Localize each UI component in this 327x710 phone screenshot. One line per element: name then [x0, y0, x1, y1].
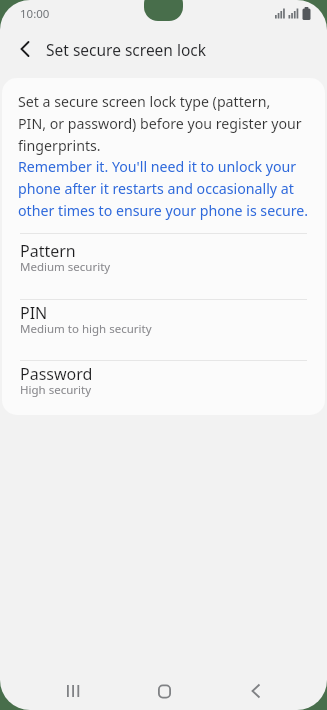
- button[interactable]: [239, 674, 273, 708]
- staticText: Set a secure screen lock type (pattern, …: [18, 92, 302, 155]
- button[interactable]: PIN: [18, 300, 309, 360]
- button[interactable]: [147, 674, 181, 708]
- staticText: Set secure screen lock: [46, 39, 207, 60]
- button[interactable]: Password: [18, 361, 309, 415]
- staticText: Medium security: [20, 259, 111, 275]
- staticText: Remember it. You'll need it to unlock yo…: [18, 157, 309, 220]
- button[interactable]: [8, 32, 42, 66]
- staticText: PIN: [20, 302, 48, 324]
- button[interactable]: [56, 674, 90, 708]
- button[interactable]: Pattern: [18, 234, 309, 299]
- staticText: Medium to high security: [20, 321, 152, 337]
- staticText: Password: [20, 363, 93, 385]
- staticText: 10:00: [20, 6, 50, 22]
- staticText: High security: [20, 382, 92, 398]
- staticText: Pattern: [20, 240, 76, 262]
